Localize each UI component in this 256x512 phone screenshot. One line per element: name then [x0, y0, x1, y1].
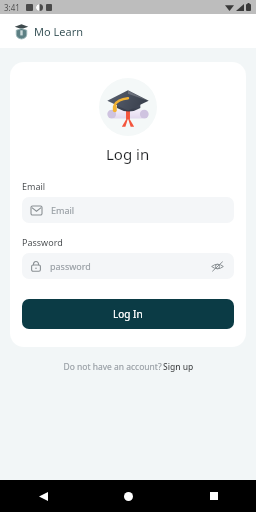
- staticText: Email: [22, 180, 46, 192]
- button[interactable]: Back: [0, 480, 86, 512]
- button[interactable]: Log In: [22, 299, 234, 329]
- button[interactable]: password: [22, 253, 234, 279]
- staticText: 3:41: [4, 2, 20, 13]
- button[interactable]: Home: [86, 480, 171, 512]
- button[interactable]: Show password: [209, 258, 225, 274]
- button[interactable]: Email: [22, 197, 234, 223]
- button[interactable]: Sign up: [163, 361, 194, 373]
- staticText: Mo Learn: [34, 24, 83, 39]
- staticText: Sign up: [163, 361, 194, 373]
- staticText: Log In: [113, 307, 143, 321]
- staticText: Email: [51, 204, 225, 216]
- staticText: Do not have an account?: [62, 361, 163, 373]
- staticText: password: [50, 260, 209, 272]
- staticText: Log in: [106, 144, 150, 164]
- staticText: Password: [22, 236, 63, 248]
- button[interactable]: Recent apps: [171, 480, 256, 512]
